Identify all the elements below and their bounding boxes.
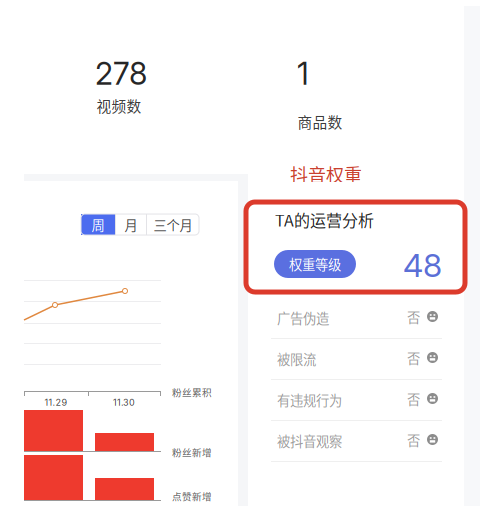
button[interactable]: 周 [81,214,115,235]
staticText: 48 [403,246,442,285]
staticText: 粉丝新增 [172,445,212,459]
staticText: 278 [95,55,147,92]
staticText: TA的运营分析 [275,208,374,231]
button[interactable]: 月 [116,214,146,235]
staticText: 月 [124,215,137,234]
staticText: 视频数 [96,95,141,116]
staticText: 否 [407,430,420,449]
staticText: 否 [407,307,420,326]
staticText: 否 [407,348,420,367]
staticText: 广告伪造 [277,308,329,327]
staticText: 11.29 [44,397,67,408]
staticText: 点赞新增 [172,489,212,503]
staticText: 有违规行为 [277,390,342,409]
staticText: 否 [407,389,420,408]
button[interactable]: 有违规行为 [248,380,464,421]
button[interactable]: 被限流 [248,339,464,380]
staticText: 权重等级 [289,254,341,274]
button[interactable]: 权重等级 [274,250,356,278]
staticText: 被限流 [277,349,316,368]
staticText: 被抖音观察 [277,431,342,450]
staticText: 抖音权重 [290,161,362,187]
button[interactable]: 广告伪造 [248,298,464,339]
button[interactable]: 三个月 [147,214,199,235]
staticText: 11.30 [113,397,135,408]
button[interactable]: 被抖音观察 [248,421,464,462]
staticText: 三个月 [153,215,192,234]
staticText: 周 [91,215,104,234]
staticText: 商品数 [297,111,342,132]
staticText: 粉丝累积 [172,385,212,399]
staticText: 1 [297,55,309,92]
